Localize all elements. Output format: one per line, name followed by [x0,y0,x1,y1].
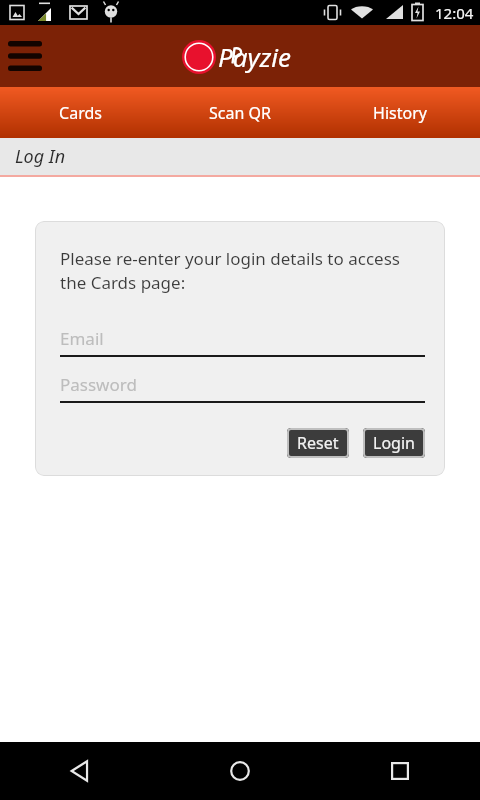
staticText: Reset [297,432,339,454]
staticText: Cards [59,102,102,124]
staticText: Please re-enter your login details to ac… [60,247,425,294]
button[interactable]: Reset [287,428,349,458]
button[interactable]: Scan QR [160,87,320,138]
staticText: History [373,102,427,124]
button[interactable]: Home [160,742,320,800]
staticText: Scan QR [209,102,271,124]
staticText: Payzie [218,39,291,74]
staticText: 12:04 [435,3,474,23]
staticText: Password [60,373,137,396]
staticText: Login [373,432,415,454]
button[interactable]: Login [363,428,425,458]
button[interactable]: Back [0,742,160,800]
staticText: Email [60,327,104,350]
button[interactable]: Email [60,326,425,357]
button[interactable]: Password [60,372,425,403]
button[interactable]: History [320,87,480,138]
button[interactable]: Open navigation menu [2,33,48,79]
staticText: Log In [15,144,66,169]
button[interactable]: Recent apps [320,742,480,800]
button[interactable]: Cards [0,87,160,138]
